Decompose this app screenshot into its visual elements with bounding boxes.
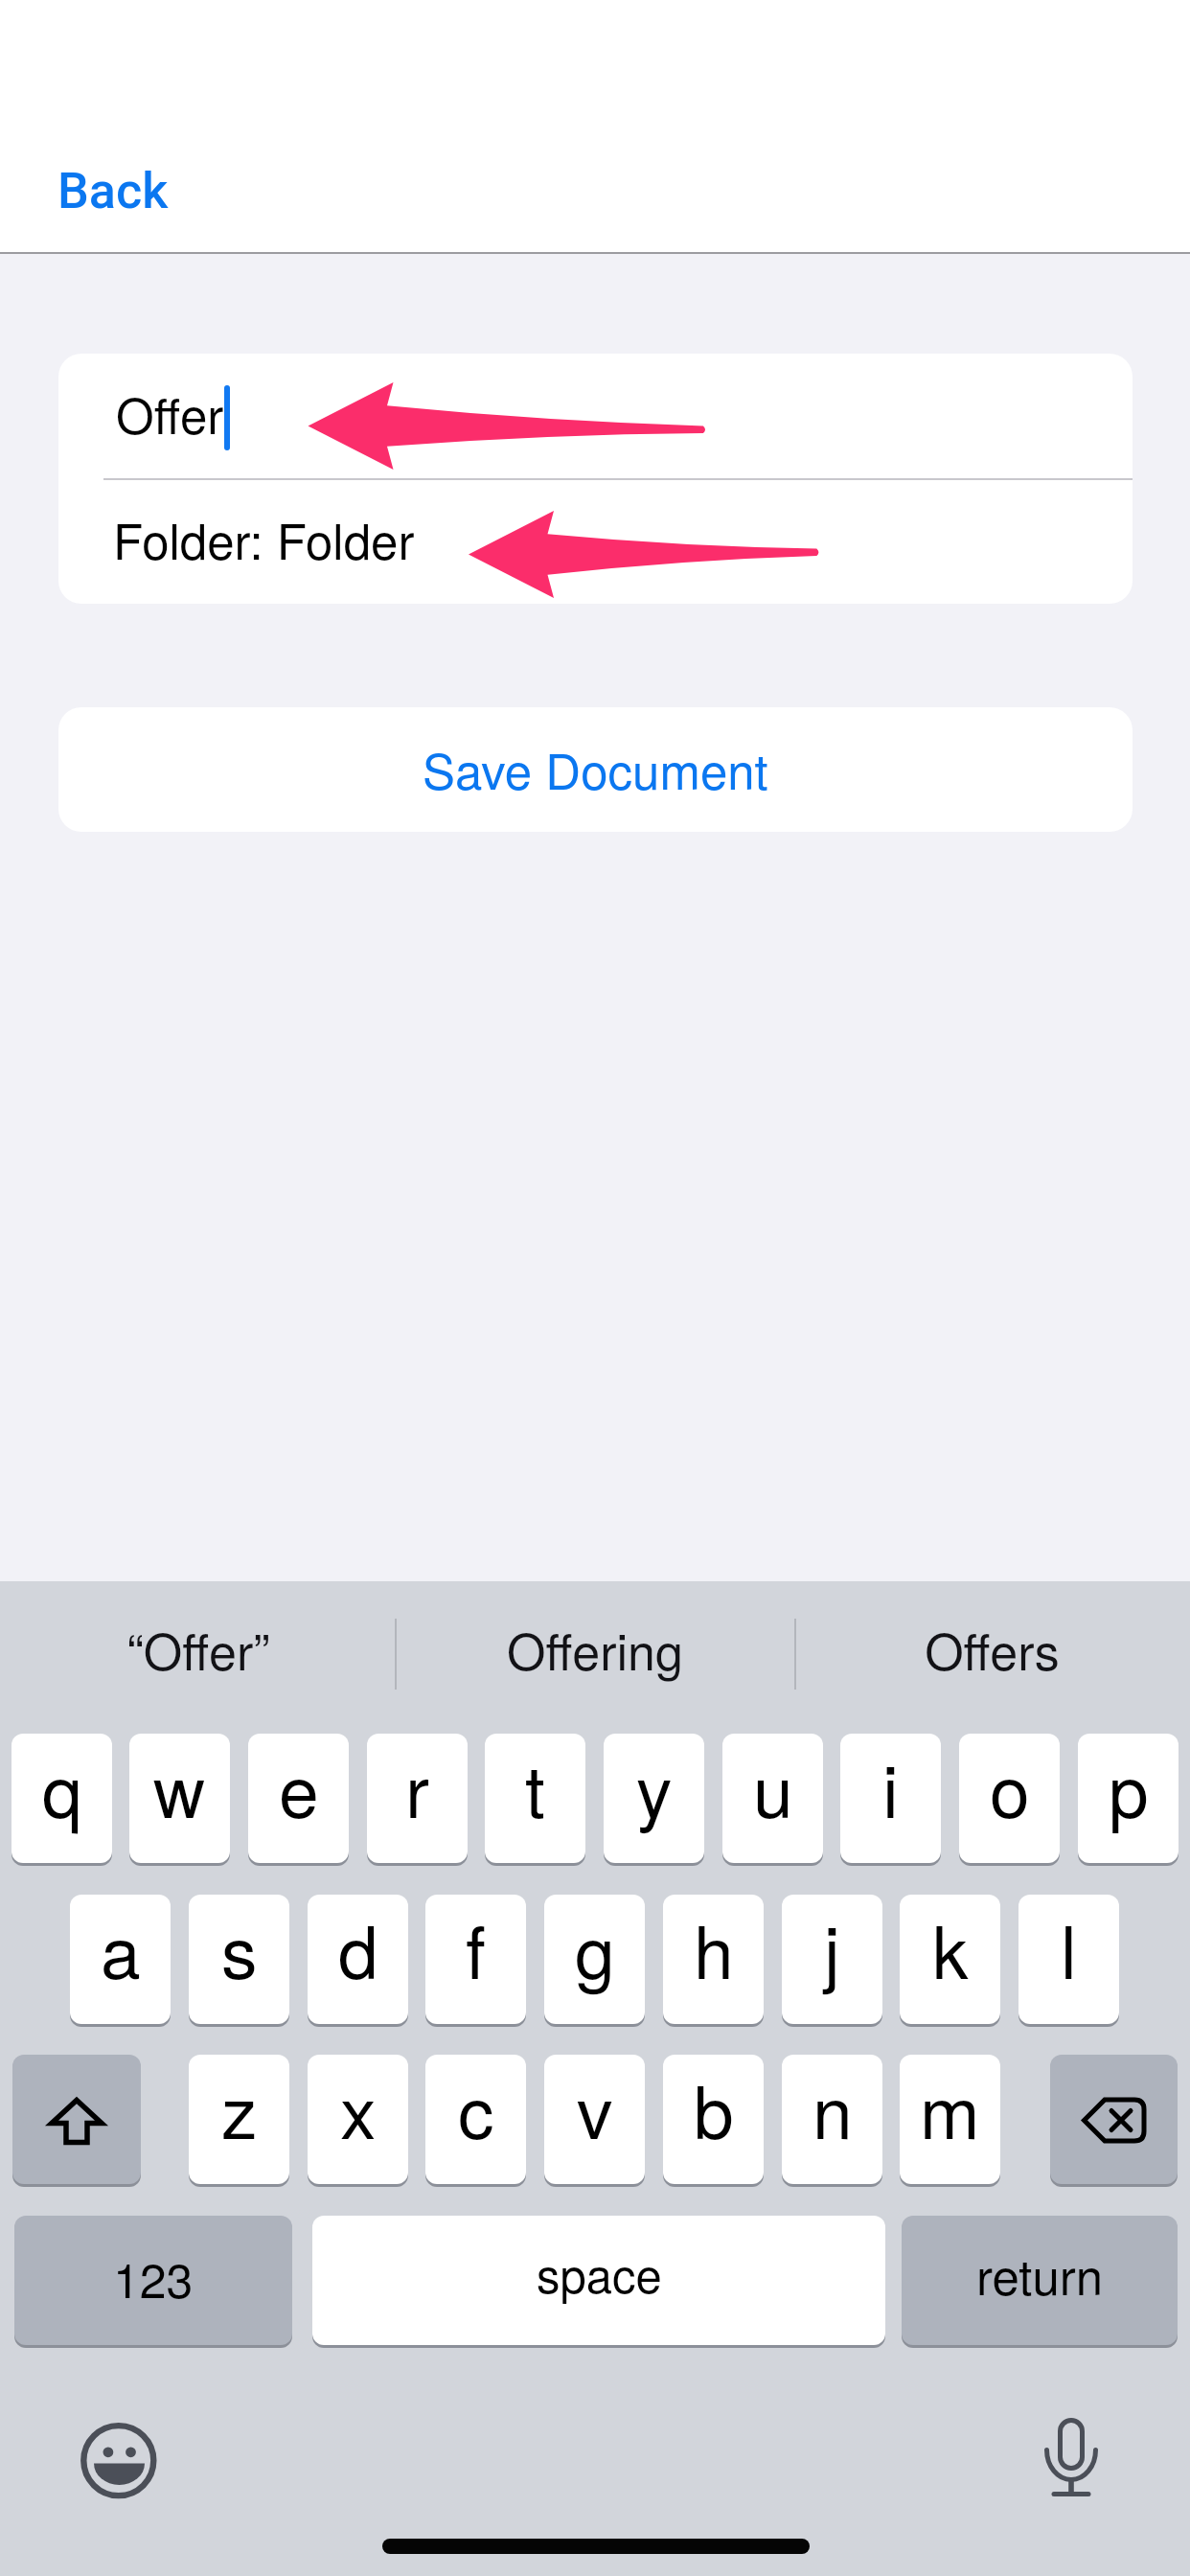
button[interactable]: v [544,2055,645,2184]
staticText: Save Document [423,733,768,803]
button[interactable]: d [308,1895,408,2024]
button[interactable]: j [782,1895,882,2024]
staticText: v [577,2057,613,2159]
button[interactable]: Dictation [1037,2407,1106,2503]
button[interactable]: Offering [397,1581,793,1721]
button[interactable]: Offer [58,354,1133,479]
staticText: Folder: Folder [113,503,415,573]
staticText: h [694,1897,734,1999]
button[interactable]: g [544,1895,645,2024]
button[interactable]: x [308,2055,408,2184]
staticText: t [525,1736,545,1838]
staticText: z [221,2057,258,2159]
button[interactable]: Offers [793,1581,1190,1721]
staticText: space [537,2240,662,2307]
staticText: c [458,2057,494,2159]
staticText: r [405,1736,429,1838]
staticText: d [338,1897,378,1999]
staticText: o [990,1736,1030,1838]
staticText: l [1061,1897,1077,1999]
button[interactable]: “Offer” [0,1581,397,1721]
staticText: b [694,2057,734,2159]
staticText: s [221,1897,258,1999]
button[interactable]: Shift [12,2055,141,2184]
button[interactable]: Emoji keyboard [80,2423,157,2499]
button[interactable]: f [425,1895,526,2024]
button[interactable]: r [367,1734,468,1863]
button[interactable]: q [11,1734,112,1863]
button[interactable]: m [900,2055,1000,2184]
button[interactable]: Backspace [1050,2055,1178,2184]
button[interactable]: o [959,1734,1060,1863]
button[interactable]: 123 [14,2216,292,2345]
staticText: Offers [925,1613,1060,1684]
button[interactable]: e [248,1734,349,1863]
button[interactable]: Back [45,140,156,198]
button[interactable]: p [1078,1734,1179,1863]
staticText: k [932,1897,969,1999]
button[interactable]: u [722,1734,823,1863]
button[interactable]: a [70,1895,171,2024]
staticText: f [466,1897,486,1999]
staticText: p [1109,1736,1149,1838]
button[interactable]: i [840,1734,941,1863]
staticText: i [882,1736,899,1838]
button[interactable]: s [189,1895,289,2024]
staticText: g [575,1897,615,1999]
staticText: q [42,1736,82,1838]
staticText: w [153,1736,206,1838]
staticText: e [279,1736,319,1838]
button[interactable]: n [782,2055,882,2184]
button[interactable]: b [663,2055,764,2184]
button[interactable]: l [1018,1895,1119,2024]
staticText: Offering [507,1613,683,1684]
button[interactable]: h [663,1895,764,2024]
button[interactable]: Folder: Folder [58,480,1133,604]
button[interactable]: t [485,1734,585,1863]
button[interactable]: k [900,1895,1000,2024]
button[interactable]: Save Document [58,707,1133,832]
staticText: a [101,1897,141,1999]
staticText: y [636,1736,673,1838]
button[interactable]: c [425,2055,526,2184]
button[interactable]: return [902,2216,1178,2345]
staticText: x [340,2057,377,2159]
button[interactable]: y [604,1734,704,1863]
staticText: 123 [113,2243,194,2312]
staticText: m [920,2057,980,2159]
button[interactable]: space [312,2216,885,2345]
button[interactable]: w [129,1734,230,1863]
staticText: u [753,1736,793,1838]
staticText: Back [57,162,169,220]
staticText: “Offer” [126,1613,270,1684]
staticText: n [812,2057,853,2159]
staticText: j [824,1897,840,1999]
staticText: return [976,2239,1104,2309]
staticText: Offer [116,378,224,448]
button[interactable]: z [189,2055,289,2184]
